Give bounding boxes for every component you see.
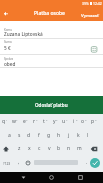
button[interactable]: Suma xyxy=(0,39,103,55)
staticText: k xyxy=(77,132,80,139)
button[interactable]: Enter xyxy=(90,158,100,168)
staticText: , xyxy=(18,159,20,166)
staticText: l xyxy=(87,132,89,139)
staticText: ?123 xyxy=(3,161,11,166)
button[interactable]: d xyxy=(24,130,34,141)
staticText: w xyxy=(12,118,16,125)
staticText: 5 xyxy=(46,118,48,121)
button[interactable]: h xyxy=(54,130,64,141)
button[interactable]: y xyxy=(49,116,59,127)
staticText: Komu xyxy=(4,28,13,32)
button[interactable]: x xyxy=(24,143,34,154)
button[interactable]: b xyxy=(54,143,64,154)
staticText: obed xyxy=(4,61,16,67)
staticText: e xyxy=(23,118,26,125)
button[interactable]: Emoji xyxy=(24,159,32,167)
button[interactable]: q xyxy=(0,116,9,127)
staticText: a xyxy=(8,132,11,139)
staticText: u xyxy=(62,118,66,125)
staticText: 12:42 xyxy=(93,1,102,6)
staticText: b xyxy=(57,145,61,152)
staticText: r xyxy=(33,118,36,125)
button[interactable]: o xyxy=(78,116,88,127)
button[interactable]: c xyxy=(34,143,44,154)
button[interactable]: v xyxy=(44,143,54,154)
button[interactable]: a xyxy=(4,130,14,141)
button[interactable]: Správa xyxy=(0,55,103,68)
button[interactable]: n xyxy=(64,143,74,154)
button[interactable]: t xyxy=(39,116,49,127)
button[interactable]: Backspace xyxy=(89,144,99,154)
staticText: Zuzana Liptovská xyxy=(4,31,43,37)
button[interactable]: j xyxy=(64,130,74,141)
button[interactable]: m xyxy=(74,143,84,154)
button[interactable]: r xyxy=(29,116,39,127)
button[interactable]: Odoslať platbu xyxy=(0,96,103,114)
staticText: 1 xyxy=(6,118,8,121)
button[interactable]: p xyxy=(88,116,98,127)
staticText: Vymazať xyxy=(81,12,99,18)
button[interactable]: Back xyxy=(1,8,11,18)
staticText: n xyxy=(67,145,71,152)
staticText: 8 xyxy=(76,118,78,121)
button[interactable]: Vymazať xyxy=(78,7,103,21)
staticText: 39% xyxy=(82,1,89,6)
staticText: t xyxy=(43,118,45,125)
button[interactable]: Period xyxy=(83,158,91,166)
button[interactable]: u xyxy=(59,116,69,127)
staticText: v xyxy=(48,145,51,152)
staticText: 5 € xyxy=(4,45,11,51)
staticText: o xyxy=(81,118,85,125)
button[interactable]: Recents xyxy=(75,172,86,183)
staticText: 7 xyxy=(66,118,68,121)
staticText: q xyxy=(2,118,6,125)
staticText: c xyxy=(38,145,41,152)
button[interactable]: s xyxy=(14,130,24,141)
button[interactable]: Calculator xyxy=(88,43,100,55)
button[interactable]: z xyxy=(14,143,24,154)
staticText: 4 xyxy=(36,118,38,121)
button[interactable]: Komu xyxy=(0,21,103,39)
staticText: m xyxy=(77,145,82,152)
staticText: x xyxy=(28,145,31,152)
staticText: f xyxy=(38,132,40,139)
staticText: Platba osobe xyxy=(34,10,65,17)
staticText: Správa xyxy=(4,57,14,61)
button[interactable]: w xyxy=(9,116,19,127)
staticText: Suma xyxy=(4,40,12,44)
button[interactable]: Comma xyxy=(15,158,23,166)
staticText: s xyxy=(18,132,21,139)
button[interactable]: e xyxy=(19,116,29,127)
staticText: Odoslať platbu xyxy=(35,102,68,108)
button[interactable]: f xyxy=(34,130,44,141)
staticText: 0 xyxy=(95,118,97,121)
staticText: p xyxy=(91,118,95,125)
button[interactable]: k xyxy=(73,130,83,141)
button[interactable]: l xyxy=(83,130,93,141)
button[interactable]: Back xyxy=(18,172,29,183)
button[interactable]: ?123 xyxy=(0,158,13,168)
staticText: 2 xyxy=(16,118,18,121)
staticText: 6 xyxy=(56,118,58,121)
button[interactable]: Shift xyxy=(1,144,11,154)
staticText: d xyxy=(27,132,31,139)
staticText: y xyxy=(53,118,56,125)
button[interactable]: g xyxy=(44,130,54,141)
staticText: . xyxy=(86,159,88,166)
staticText: h xyxy=(57,132,61,139)
button[interactable]: i xyxy=(69,116,79,127)
staticText: g xyxy=(47,132,51,139)
button[interactable]: Home xyxy=(46,172,57,183)
staticText: z xyxy=(18,145,21,152)
staticText: 3 xyxy=(26,118,28,121)
staticText: j xyxy=(68,132,70,139)
staticText: 9 xyxy=(85,118,87,121)
staticText: i xyxy=(73,118,75,125)
